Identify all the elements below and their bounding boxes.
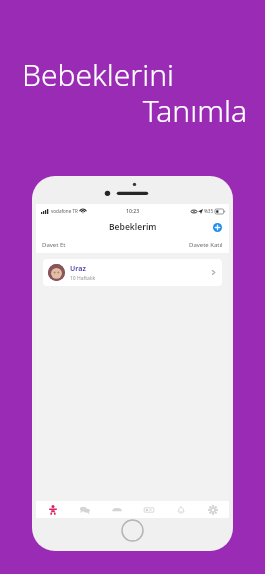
button[interactable]: Davet Et bbox=[36, 236, 72, 253]
staticText: Bebeklerini bbox=[22, 54, 265, 95]
button[interactable]: Home bbox=[36, 501, 69, 518]
staticText: 10:23 bbox=[126, 207, 140, 214]
staticText: Davete Katıl bbox=[189, 241, 223, 249]
staticText: %35 bbox=[204, 208, 214, 214]
button[interactable]: Sleep bbox=[101, 501, 133, 518]
button[interactable]: Add baby bbox=[211, 221, 223, 233]
button[interactable]: Diary bbox=[133, 501, 165, 518]
button[interactable]: Messages bbox=[69, 501, 101, 518]
staticText: Bebeklerim bbox=[109, 221, 157, 233]
staticText: Davet Et bbox=[42, 241, 66, 249]
button[interactable]: Notifications bbox=[165, 501, 197, 518]
button[interactable]: Settings bbox=[197, 501, 229, 518]
button[interactable]: Davete Katıl bbox=[183, 236, 229, 253]
staticText: Tanımla bbox=[0, 90, 247, 131]
staticText: Uraz bbox=[70, 264, 86, 274]
button[interactable]: Uraz bbox=[43, 259, 222, 286]
staticText: 10 Haftalık bbox=[70, 275, 96, 282]
staticText: vodafone TR bbox=[51, 208, 78, 214]
